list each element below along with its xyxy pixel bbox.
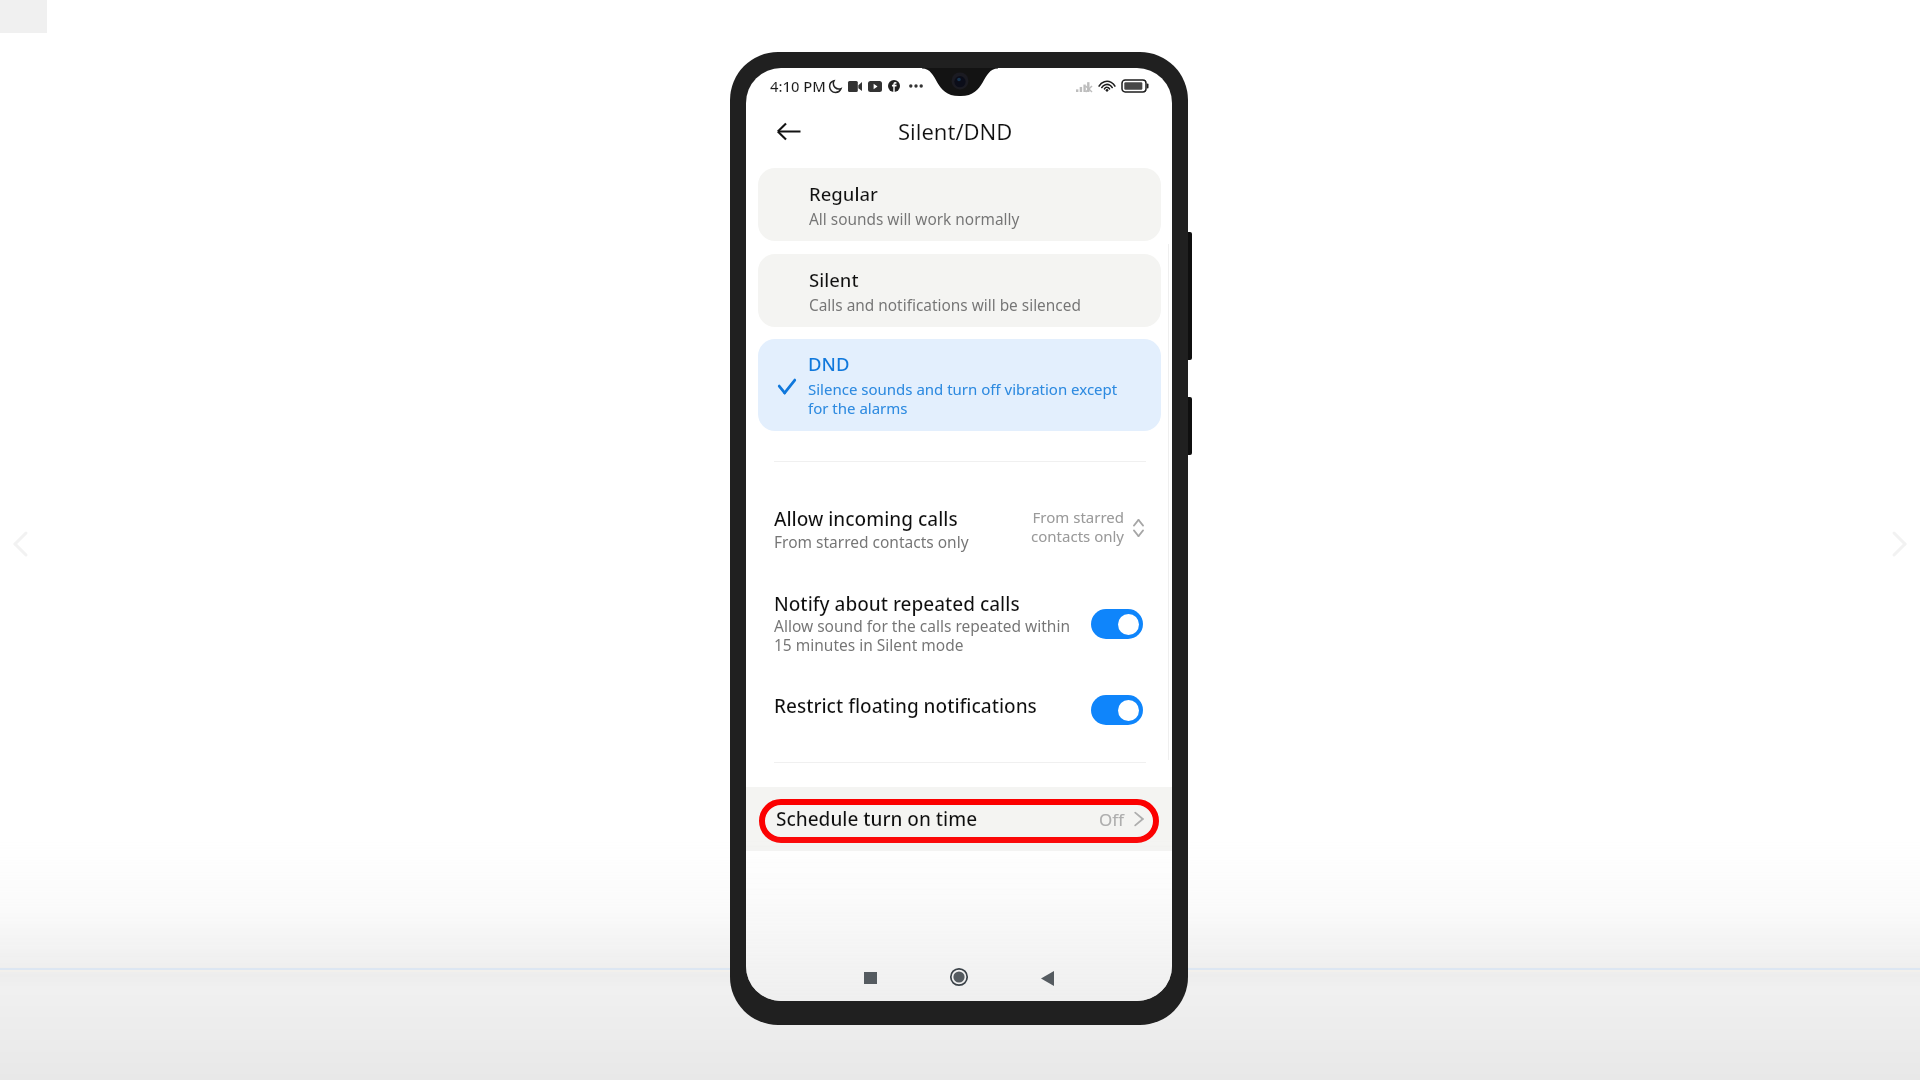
- staticText: Silence sounds and turn off vibration ex…: [808, 379, 1130, 418]
- button[interactable]: Notify about repeated calls, on: [1091, 609, 1143, 639]
- button[interactable]: Restrict floating notifications: [774, 690, 1150, 730]
- staticText: Regular: [809, 181, 878, 206]
- staticText: All sounds will work normally: [809, 209, 1020, 230]
- staticText: Restrict floating notifications: [774, 693, 1037, 719]
- button[interactable]: Regular: [758, 168, 1161, 241]
- button[interactable]: Restrict floating notifications, on: [1091, 695, 1143, 725]
- staticText: Silent: [809, 267, 859, 292]
- button[interactable]: Back: [1025, 956, 1069, 1000]
- staticText: Schedule turn on time: [776, 806, 978, 832]
- button[interactable]: DND: [758, 339, 1161, 431]
- button[interactable]: Schedule turn on time: [776, 797, 1146, 841]
- button[interactable]: Next: [1884, 525, 1914, 555]
- button[interactable]: Silent: [758, 254, 1161, 327]
- staticText: Calls and notifications will be silenced: [809, 295, 1081, 316]
- staticText: Allow incoming calls: [774, 506, 958, 532]
- staticText: From starred contacts only: [774, 531, 969, 552]
- staticText: Allow sound for the calls repeated withi…: [774, 615, 1074, 655]
- staticText: 4:10 PM: [770, 76, 826, 96]
- staticText: Silent/DND: [898, 116, 1013, 146]
- staticText: DND: [808, 351, 850, 376]
- button[interactable]: Recents: [848, 956, 892, 1000]
- staticText: From starred contacts only: [1030, 507, 1124, 546]
- staticText: Off: [1099, 808, 1124, 831]
- button[interactable]: Previous: [6, 525, 36, 555]
- staticText: Notify about repeated calls: [774, 591, 1020, 617]
- button[interactable]: Notify about repeated calls: [774, 588, 1150, 664]
- button[interactable]: Allow incoming calls: [774, 500, 1150, 560]
- button[interactable]: Home: [937, 955, 981, 999]
- button[interactable]: Back: [777, 115, 809, 147]
